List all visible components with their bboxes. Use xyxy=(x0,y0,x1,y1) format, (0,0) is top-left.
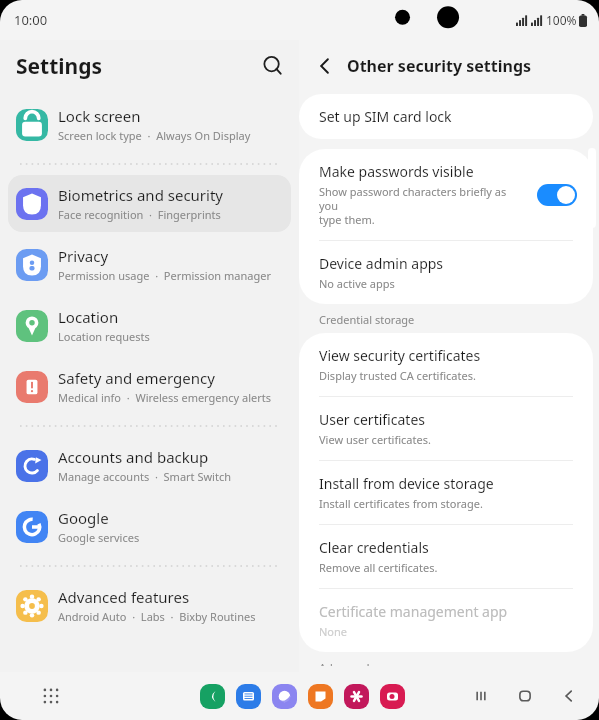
button[interactable]: Biometrics and security xyxy=(8,175,291,232)
button[interactable]: cam xyxy=(380,684,405,709)
staticText: Device admin apps xyxy=(319,254,444,273)
button[interactable]: Search xyxy=(261,54,285,78)
button[interactable]: Make passwords visible xyxy=(299,149,593,240)
staticText: Lock screen xyxy=(58,106,141,126)
button[interactable]: star xyxy=(344,684,369,709)
staticText: No active apps xyxy=(319,276,395,291)
staticText: Screen lock type · Always On Display xyxy=(58,128,251,143)
button[interactable]: msg xyxy=(236,684,261,709)
staticText: Advanced xyxy=(319,660,370,666)
staticText: Location xyxy=(58,307,119,327)
button[interactable]: phone xyxy=(200,684,225,709)
button[interactable]: View security certificates xyxy=(299,333,593,396)
staticText: View user certificates. xyxy=(319,432,431,447)
staticText: Medical info · Wireless emergency alerts xyxy=(58,390,272,405)
button[interactable]: Privacy xyxy=(8,236,291,293)
button[interactable]: Back xyxy=(313,54,337,78)
staticText: Safety and emergency xyxy=(58,368,215,388)
staticText: Other security settings xyxy=(347,55,532,77)
button[interactable]: Accounts and backup xyxy=(8,437,291,494)
staticText: Credential storage xyxy=(319,312,415,327)
button[interactable]: Safety and emergency xyxy=(8,358,291,415)
staticText: Display trusted CA certificates. xyxy=(319,368,476,383)
button[interactable]: Location xyxy=(8,297,291,354)
staticText: None xyxy=(319,624,348,639)
button[interactable]: net xyxy=(272,684,297,709)
staticText: Privacy xyxy=(58,246,109,266)
staticText: Set up SIM card lock xyxy=(319,107,452,126)
button[interactable]: Back xyxy=(561,688,577,704)
staticText: View security certificates xyxy=(319,346,481,365)
staticText: Google xyxy=(58,508,109,528)
button[interactable]: Certificate management app xyxy=(299,589,593,652)
staticText: Face recognition · Fingerprints xyxy=(58,207,221,222)
staticText: Accounts and backup xyxy=(58,447,209,467)
button[interactable]: Home xyxy=(517,688,533,704)
staticText: Advanced features xyxy=(58,587,190,607)
button[interactable]: Advanced features xyxy=(8,577,291,634)
staticText: Permission usage · Permission manager xyxy=(58,268,271,283)
staticText: Manage accounts · Smart Switch xyxy=(58,469,231,484)
button[interactable]: Make passwords visible toggle xyxy=(537,184,577,206)
staticText: Android Auto · Labs · Bixby Routines xyxy=(58,609,256,624)
button[interactable]: Google xyxy=(8,498,291,555)
button[interactable]: Set up SIM card lock xyxy=(299,94,593,139)
staticText: Install from device storage xyxy=(319,474,494,493)
button[interactable]: Device admin apps xyxy=(299,241,593,304)
button[interactable]: Apps xyxy=(42,687,60,705)
button[interactable]: Clear credentials xyxy=(299,525,593,588)
button[interactable]: Recents xyxy=(473,688,489,704)
staticText: Clear credentials xyxy=(319,538,429,557)
button[interactable]: User certificates xyxy=(299,397,593,460)
staticText: 100% xyxy=(546,12,577,28)
button[interactable]: Install from device storage xyxy=(299,461,593,524)
button[interactable]: notes xyxy=(308,684,333,709)
staticText: Biometrics and security xyxy=(58,185,224,205)
staticText: Settings xyxy=(16,52,261,81)
staticText: Certificate management app xyxy=(319,602,508,621)
staticText: Google services xyxy=(58,530,140,545)
staticText: 10:00 xyxy=(14,11,48,29)
staticText: Location requests xyxy=(58,329,150,344)
button[interactable]: Lock screen xyxy=(8,96,291,153)
staticText: User certificates xyxy=(319,410,425,429)
staticText: Make passwords visible xyxy=(319,162,474,181)
staticText: Show password characters briefly as you … xyxy=(319,184,527,227)
staticText: Install certificates from storage. xyxy=(319,496,483,511)
staticText: Remove all certificates. xyxy=(319,560,438,575)
